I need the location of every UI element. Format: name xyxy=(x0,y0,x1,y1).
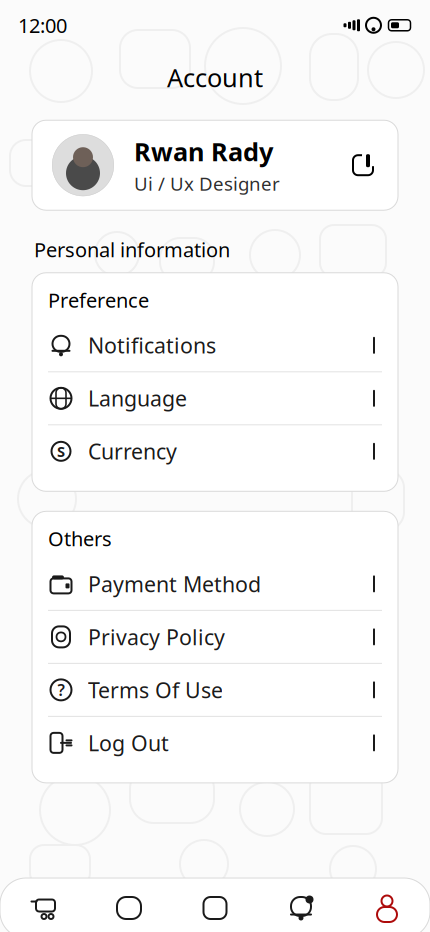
button[interactable]: Favorites xyxy=(86,893,172,923)
button[interactable]: Privacy Policy xyxy=(32,611,398,663)
staticText: Account xyxy=(167,61,263,94)
staticText: Personal information xyxy=(34,236,230,263)
button[interactable]: Account xyxy=(344,893,430,923)
staticText: Ui / Ux Designer xyxy=(134,171,280,196)
button[interactable]: ? xyxy=(32,664,398,716)
button[interactable]: S xyxy=(32,425,398,477)
staticText: Others xyxy=(48,525,112,552)
button[interactable]: Log Out xyxy=(32,717,398,769)
staticText: S xyxy=(57,442,65,461)
staticText: Payment Method xyxy=(88,570,261,598)
staticText: Language xyxy=(88,384,187,412)
staticText: 12:00 xyxy=(18,12,67,39)
button[interactable]: Notifications xyxy=(32,319,398,371)
button[interactable]: Home xyxy=(172,893,258,923)
staticText: Privacy Policy xyxy=(88,623,225,651)
button[interactable]: Language xyxy=(32,372,398,424)
button[interactable]: Cart xyxy=(0,893,86,923)
staticText: Notifications xyxy=(88,331,216,359)
staticText: Currency xyxy=(88,437,177,465)
button[interactable]: Notifications xyxy=(258,893,344,923)
button[interactable]: Payment Method xyxy=(32,558,398,610)
staticText: ? xyxy=(57,679,64,700)
staticText: Rwan Rady xyxy=(134,134,273,168)
staticText: Log Out xyxy=(88,729,169,757)
button[interactable]: Rwan Rady xyxy=(0,120,430,210)
staticText: Terms Of Use xyxy=(88,676,223,704)
staticText: Preference xyxy=(48,287,149,313)
